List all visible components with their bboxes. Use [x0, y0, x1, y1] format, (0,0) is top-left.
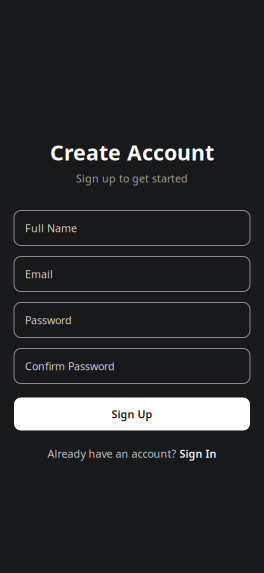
button[interactable]: Confirm Password	[14, 348, 250, 383]
staticText: Create Account	[50, 138, 214, 166]
button[interactable]: Password	[14, 302, 250, 337]
staticText: Full Name	[25, 221, 77, 235]
staticText: Confirm Password	[25, 359, 115, 373]
staticText: Password	[25, 313, 72, 327]
button[interactable]: Sign Up	[14, 397, 250, 430]
button[interactable]: Already have an account?	[47, 446, 216, 461]
button[interactable]: Email	[14, 256, 250, 291]
staticText: Email	[25, 267, 53, 281]
staticText: Sign up to get started	[76, 171, 188, 185]
button[interactable]: Full Name	[14, 210, 250, 245]
staticText: Sign Up	[111, 407, 152, 421]
staticText: Sign In	[179, 446, 216, 461]
staticText: Already have an account?	[47, 446, 176, 461]
